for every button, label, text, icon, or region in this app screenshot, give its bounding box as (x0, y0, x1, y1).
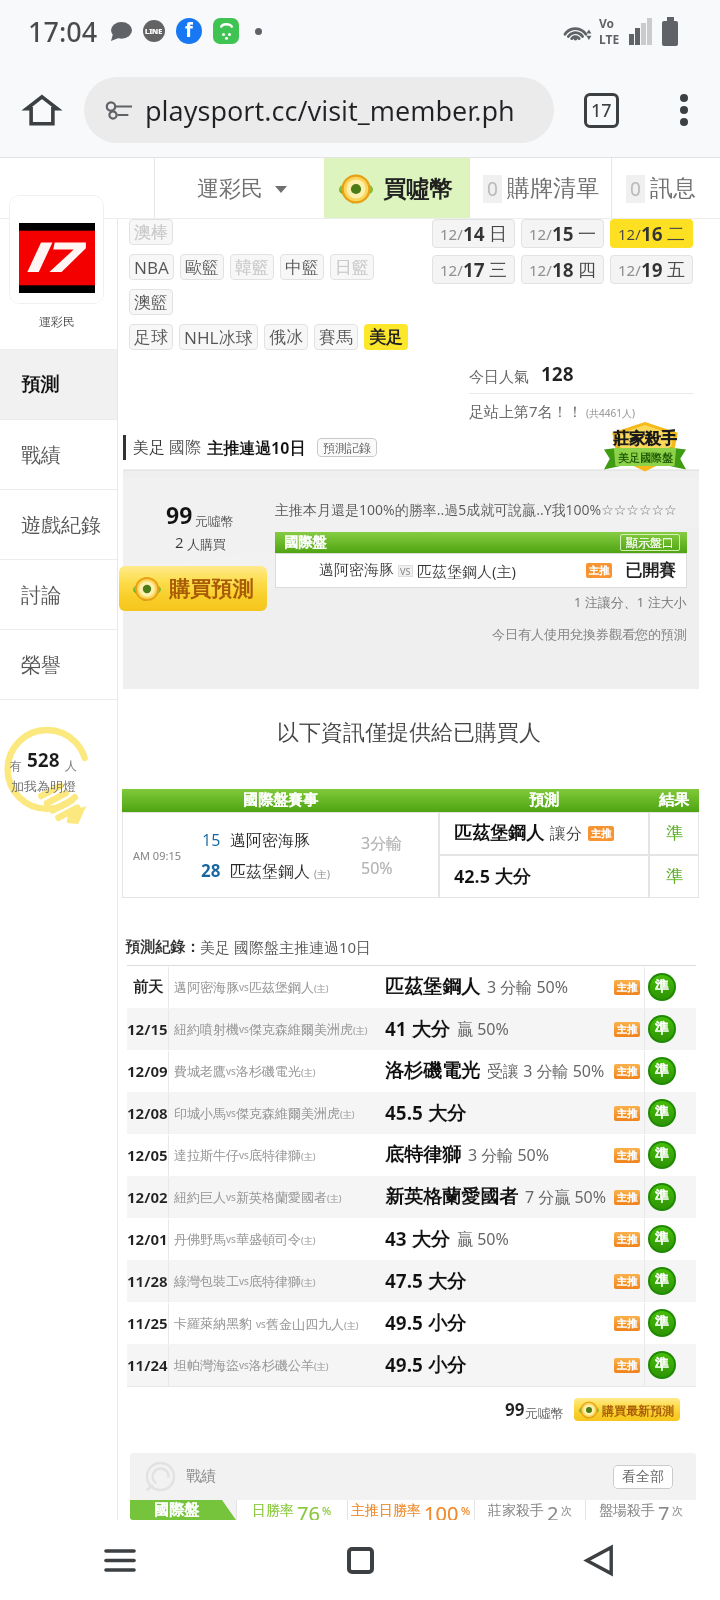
staticText: 預測 (529, 791, 559, 810)
button[interactable]: 12/15 (127, 1008, 696, 1050)
staticText: vs (226, 1232, 236, 1246)
staticText: 洛杉磯電光 (385, 1059, 480, 1083)
staticText: 紐約噴射機 (174, 1021, 239, 1037)
staticText: 賽馬 (319, 327, 353, 348)
staticText: 12/ (440, 224, 463, 244)
button[interactable]: 澳棒 (129, 219, 173, 245)
button[interactable]: Recents (0, 1520, 240, 1600)
button[interactable]: NBA (129, 254, 174, 280)
staticText: 新英格蘭愛國者 (236, 1189, 327, 1205)
staticText: 次 (672, 1504, 683, 1518)
staticText: 12/ (440, 260, 463, 280)
button[interactable]: 看全部 (613, 1465, 673, 1489)
button[interactable]: 歐籃 (180, 254, 224, 280)
staticText: 47.5 大分 (385, 1268, 466, 1294)
staticText: vs (256, 1317, 266, 1331)
button[interactable]: 12/ (521, 219, 604, 248)
staticText: 準 (655, 1272, 669, 1290)
staticText: VS (400, 565, 411, 577)
staticText: 盤場殺手 (599, 1502, 655, 1520)
staticText: 歐籃 (185, 257, 219, 278)
staticText: vs (239, 1358, 249, 1372)
staticText: 顯示盤口 (626, 535, 674, 550)
button[interactable]: 11/28 (127, 1260, 696, 1302)
staticText: vs (226, 1190, 236, 1204)
staticText: 費城老鷹 (174, 1063, 226, 1079)
button[interactable]: 戰績 (0, 420, 117, 490)
staticText: 洛杉磯電光 (236, 1063, 301, 1079)
staticText: (主) (301, 1276, 316, 1288)
button[interactable]: 遊戲紀錄 (0, 490, 117, 560)
button[interactable]: 購買預測 (119, 566, 267, 611)
button[interactable]: 11/24 (127, 1344, 696, 1386)
button[interactable]: 12/09 (127, 1050, 696, 1092)
button[interactable]: 賽馬 (314, 324, 358, 350)
staticText: 0 (630, 176, 641, 202)
staticText: 7 分贏 50% (525, 1186, 607, 1208)
button[interactable]: 美足 (364, 324, 408, 350)
staticText: 12/ (529, 224, 552, 244)
staticText: 12/ (618, 224, 641, 244)
button[interactable]: Tabs (554, 62, 648, 158)
button[interactable]: 澳籃 (129, 289, 173, 315)
staticText: 17:04 (28, 13, 98, 50)
button[interactable]: 預測 (0, 350, 117, 420)
button[interactable]: 中籃 (280, 254, 324, 280)
staticText: playsport.cc/visit_member.ph (145, 92, 515, 129)
button[interactable]: Home (0, 62, 84, 158)
button[interactable]: 購買最新預測 (574, 1398, 680, 1421)
button[interactable]: 12/ (610, 219, 693, 248)
button[interactable]: 0 (470, 158, 611, 219)
button[interactable]: 足球 (129, 324, 173, 350)
staticText: 美足 (133, 438, 165, 458)
button[interactable]: 榮譽 (0, 630, 117, 700)
button[interactable]: 12/01 (127, 1218, 696, 1260)
button[interactable]: 11/25 (127, 1302, 696, 1344)
button[interactable]: 12/02 (127, 1176, 696, 1218)
button[interactable]: 日籃 (330, 254, 374, 280)
staticText: 預測記錄 (323, 440, 371, 455)
staticText: 達拉斯牛仔 (174, 1147, 239, 1163)
staticText: LINE (145, 26, 163, 36)
staticText: 一 (578, 223, 596, 246)
staticText: 丹佛野馬 (174, 1231, 226, 1247)
button[interactable]: 12/ (610, 255, 693, 284)
button[interactable]: 韓籃 (230, 254, 274, 280)
button[interactable]: 12/ (432, 219, 515, 248)
button[interactable]: 前天 (127, 966, 696, 1008)
staticText: 12/05 (127, 1145, 168, 1165)
button[interactable]: 預測記錄 (317, 438, 377, 457)
button[interactable]: Home (240, 1520, 480, 1600)
button[interactable]: 12/05 (127, 1134, 696, 1176)
staticText: 看全部 (622, 1468, 664, 1486)
staticText: 卡羅萊納黑豹 (174, 1314, 256, 1332)
staticText: 國際盤賽事 (243, 791, 318, 810)
button[interactable]: 討論 (0, 560, 117, 630)
staticText: vs (226, 1106, 236, 1120)
staticText: 足球 (134, 327, 168, 348)
staticText: 結果 (659, 791, 689, 810)
staticText: 準 (655, 1356, 669, 1374)
staticText: 準 (666, 866, 683, 887)
staticText: 主推日勝率 (351, 1502, 421, 1520)
button[interactable]: 12/ (432, 255, 515, 284)
staticText: 有 (10, 758, 22, 773)
button[interactable]: 買噓幣 (324, 158, 469, 219)
button[interactable]: NHL冰球 (179, 324, 258, 350)
staticText: 11/28 (127, 1271, 168, 1291)
button[interactable]: 顯示盤口 (620, 534, 680, 551)
staticText: 主推 (617, 1191, 637, 1204)
button[interactable]: 運彩民 (155, 158, 324, 219)
button[interactable]: 12/08 (127, 1092, 696, 1134)
button[interactable]: 俄冰 (264, 324, 308, 350)
staticText: 買噓幣 (383, 175, 452, 204)
staticText: vs (239, 1022, 249, 1036)
staticText: (主) (327, 1192, 342, 1204)
button[interactable]: playsport.cc/visit_member.ph (84, 77, 554, 143)
staticText: 購牌清單 (507, 174, 599, 203)
staticText: (主) (301, 1234, 316, 1246)
button[interactable]: More options (648, 62, 720, 158)
button[interactable]: Back (480, 1520, 720, 1600)
button[interactable]: 0 (612, 158, 720, 219)
button[interactable]: 12/ (521, 255, 604, 284)
